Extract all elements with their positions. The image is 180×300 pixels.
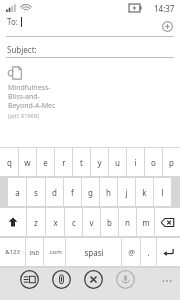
button[interactable]: c xyxy=(65,208,82,236)
button[interactable]: t xyxy=(73,148,90,176)
button[interactable]: Attach xyxy=(50,268,72,290)
button[interactable]: r xyxy=(55,148,72,176)
button[interactable]: o xyxy=(145,148,162,176)
button[interactable]: IND xyxy=(26,238,43,266)
staticText: To: xyxy=(7,16,18,27)
button[interactable]: g xyxy=(82,178,99,206)
button[interactable]: &123 xyxy=(0,238,25,266)
button[interactable]: z xyxy=(27,208,45,236)
button[interactable]: y xyxy=(91,148,108,176)
staticText: d xyxy=(52,187,57,198)
staticText: &123 xyxy=(5,248,20,256)
button[interactable]: e xyxy=(37,148,54,176)
button[interactable]: i xyxy=(127,148,144,176)
button[interactable]: .com xyxy=(44,238,65,266)
staticText: z xyxy=(34,217,38,228)
button[interactable]: d xyxy=(46,178,63,206)
button[interactable]: h xyxy=(100,178,117,206)
button[interactable]: x xyxy=(46,208,64,236)
staticText: Mindfulness- Bliss-and- Beyond-A-Mec xyxy=(8,83,56,110)
staticText: m xyxy=(142,217,150,228)
button[interactable]: a xyxy=(8,178,26,206)
button[interactable]: w xyxy=(19,148,36,176)
staticText: x xyxy=(53,217,58,228)
staticText: a xyxy=(15,187,20,198)
button[interactable]: n xyxy=(119,208,136,236)
button[interactable]: @ xyxy=(122,238,140,266)
staticText: n xyxy=(125,217,130,228)
button[interactable]: l xyxy=(154,178,171,206)
button[interactable]: Voice xyxy=(114,268,136,290)
staticText: l xyxy=(161,187,164,198)
staticText: y xyxy=(97,157,102,168)
staticText: e xyxy=(43,157,48,168)
button[interactable]: . xyxy=(141,238,156,266)
button[interactable]: k xyxy=(136,178,153,206)
button[interactable]: back xyxy=(155,208,180,236)
staticText: c xyxy=(72,217,76,228)
button[interactable]: Close xyxy=(82,268,104,290)
button[interactable]: spasi xyxy=(66,238,121,266)
staticText: Subject: xyxy=(7,44,37,55)
button[interactable]: q xyxy=(0,148,18,176)
staticText: r xyxy=(62,157,66,168)
staticText: o xyxy=(151,157,156,168)
staticText: h xyxy=(106,187,111,198)
button[interactable]: f xyxy=(64,178,81,206)
button[interactable]: u xyxy=(109,148,126,176)
button[interactable]: v xyxy=(83,208,100,236)
staticText: p xyxy=(169,157,174,168)
staticText: s xyxy=(34,187,38,198)
staticText: (pdf, 979KB) xyxy=(8,112,40,119)
button[interactable]: m xyxy=(137,208,154,236)
button[interactable]: Add recipient xyxy=(159,18,175,34)
staticText: i xyxy=(134,157,137,168)
button[interactable]: More options xyxy=(158,272,176,290)
staticText: k xyxy=(142,187,147,198)
button[interactable]: Mindfulness- Bliss-and- Beyond-A-Mec xyxy=(8,66,56,119)
staticText: g xyxy=(88,187,93,198)
staticText: v xyxy=(89,217,94,228)
button[interactable]: enter xyxy=(157,238,180,266)
button[interactable]: Send xyxy=(18,268,40,290)
button[interactable]: b xyxy=(101,208,118,236)
button[interactable]: p xyxy=(163,148,180,176)
button[interactable]: shift xyxy=(0,208,26,236)
staticText: u xyxy=(115,157,120,168)
staticText: @ xyxy=(128,247,135,257)
staticText: .com xyxy=(48,248,62,256)
staticText: w xyxy=(24,157,31,168)
staticText: . xyxy=(147,247,150,258)
staticText: b xyxy=(107,217,112,228)
staticText: f xyxy=(71,187,74,198)
staticText: t xyxy=(80,157,83,168)
staticText: IND xyxy=(29,249,40,256)
staticText: 14:37 xyxy=(154,3,175,14)
staticText: j xyxy=(125,187,128,198)
button[interactable]: j xyxy=(118,178,135,206)
staticText: spasi xyxy=(84,247,104,258)
staticText: q xyxy=(7,157,12,168)
button[interactable]: s xyxy=(27,178,45,206)
